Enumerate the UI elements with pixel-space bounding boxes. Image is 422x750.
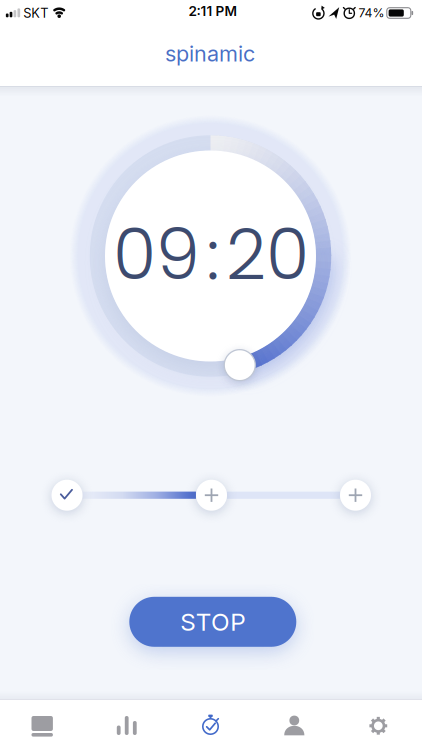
staticText: 2:11 PM bbox=[188, 3, 237, 19]
button[interactable] bbox=[169, 700, 253, 750]
button[interactable] bbox=[340, 480, 371, 511]
staticText: 09 bbox=[113, 205, 200, 303]
staticText: SKT bbox=[23, 5, 48, 21]
staticText: 74% bbox=[358, 5, 384, 20]
button[interactable] bbox=[51, 480, 82, 511]
button[interactable] bbox=[253, 700, 338, 750]
button[interactable]: STOP bbox=[129, 597, 296, 647]
button[interactable] bbox=[196, 480, 227, 511]
staticText: spinamic bbox=[165, 40, 255, 67]
button[interactable] bbox=[224, 350, 255, 381]
button[interactable] bbox=[84, 700, 169, 750]
button[interactable] bbox=[338, 700, 422, 750]
staticText: : bbox=[206, 205, 219, 303]
button[interactable] bbox=[0, 700, 84, 750]
staticText: 20 bbox=[226, 205, 309, 303]
staticText: STOP bbox=[180, 607, 245, 636]
